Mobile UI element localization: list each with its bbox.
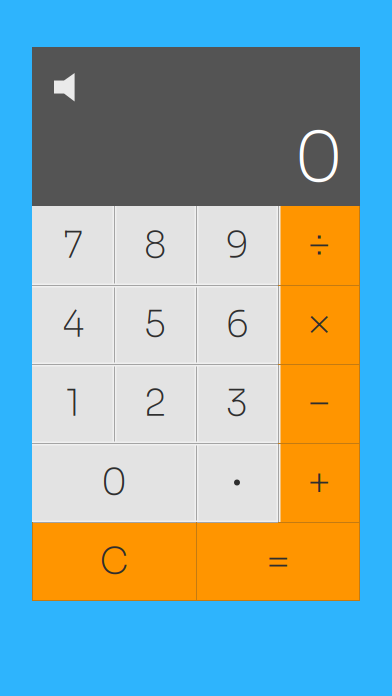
button[interactable]: − [278, 364, 360, 443]
staticText: × [307, 298, 331, 351]
staticText: = [266, 535, 290, 588]
button[interactable]: 0 [32, 443, 196, 522]
staticText: 8 [144, 223, 166, 268]
button[interactable]: 8 [114, 206, 196, 285]
staticText: 5 [144, 302, 166, 347]
staticText: ÷ [307, 219, 331, 272]
staticText: 0 [101, 460, 127, 505]
staticText: − [307, 377, 331, 430]
button[interactable]: = [196, 522, 360, 601]
button[interactable]: C [32, 522, 196, 601]
staticText: 2 [144, 381, 166, 426]
button[interactable]: 5 [114, 285, 196, 364]
button[interactable]: 3 [196, 364, 278, 443]
staticText: 1 [65, 381, 80, 426]
button[interactable]: 9 [196, 206, 278, 285]
staticText: 0 [294, 115, 343, 201]
button[interactable]: ÷ [278, 206, 360, 285]
button[interactable]: 7 [32, 206, 114, 285]
button[interactable]: 4 [32, 285, 114, 364]
button[interactable]: 6 [196, 285, 278, 364]
staticText: 6 [225, 302, 248, 347]
button[interactable]: 1 [32, 364, 114, 443]
staticText: + [307, 456, 331, 509]
staticText: 7 [63, 223, 83, 268]
button[interactable]: Decimal point [196, 443, 278, 522]
staticText: 9 [225, 223, 248, 268]
staticText: 3 [226, 381, 248, 426]
button[interactable]: Sound [32, 47, 75, 102]
button[interactable]: 2 [114, 364, 196, 443]
staticText: 4 [62, 302, 84, 347]
button[interactable]: + [278, 443, 360, 522]
button[interactable]: × [278, 285, 360, 364]
staticText: C [99, 539, 128, 584]
